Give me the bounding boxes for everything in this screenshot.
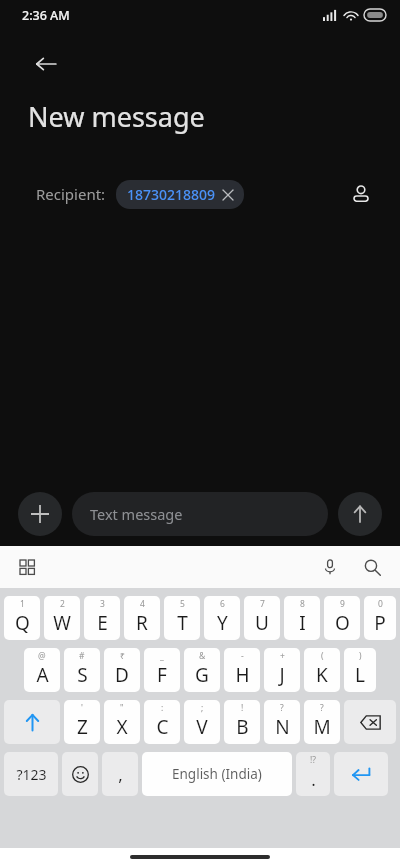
staticText: 5 xyxy=(180,598,185,610)
staticText: M xyxy=(313,714,331,740)
staticText: H xyxy=(235,662,250,688)
staticText: English (India) xyxy=(172,765,262,783)
staticText: O xyxy=(335,610,350,636)
button[interactable]: , xyxy=(102,752,138,796)
button[interactable]: 6 xyxy=(204,596,240,640)
staticText: K xyxy=(316,662,328,688)
staticText: 2:36 AM xyxy=(22,7,70,24)
button[interactable]: Text message xyxy=(72,492,328,536)
staticText: X xyxy=(116,714,128,740)
staticText: ? xyxy=(320,702,324,714)
staticText: New message xyxy=(28,98,205,135)
staticText: ₹ xyxy=(120,650,125,662)
button[interactable] xyxy=(344,700,396,744)
staticText: E xyxy=(97,610,108,636)
staticText: N xyxy=(275,714,290,740)
staticText: 7 xyxy=(260,598,265,610)
staticText: ) xyxy=(359,650,362,662)
button[interactable]: 1 xyxy=(4,596,40,640)
staticText: A xyxy=(36,662,49,688)
staticText: 3 xyxy=(100,598,105,610)
button[interactable]: Back xyxy=(28,46,64,82)
button[interactable]: Voice input xyxy=(314,551,346,583)
button[interactable]: ( xyxy=(304,648,340,692)
button[interactable]: 0 xyxy=(364,596,396,640)
staticText: 0 xyxy=(378,598,383,610)
button[interactable]: English (India) xyxy=(142,752,292,796)
staticText: W xyxy=(53,610,71,636)
button[interactable]: 9 xyxy=(324,596,360,640)
button[interactable]: ? xyxy=(304,700,340,744)
button[interactable]: : xyxy=(144,700,180,744)
button[interactable]: !? xyxy=(296,752,330,796)
staticText: 8 xyxy=(300,598,305,610)
staticText: F xyxy=(157,662,167,688)
button[interactable]: Add attachment xyxy=(18,492,62,536)
staticText: Recipient: xyxy=(36,184,106,204)
staticText: P xyxy=(374,610,386,636)
staticText: Z xyxy=(77,714,88,740)
button[interactable]: 2 xyxy=(44,596,80,640)
staticText: @ xyxy=(38,650,46,662)
staticText: 4 xyxy=(140,598,145,610)
button[interactable]: " xyxy=(104,700,140,744)
button[interactable]: ' xyxy=(64,700,100,744)
button[interactable]: 8 xyxy=(284,596,320,640)
button[interactable]: 4 xyxy=(124,596,160,640)
staticText: , xyxy=(118,763,123,786)
staticText: + xyxy=(280,650,285,662)
staticText: 6 xyxy=(220,598,225,610)
button[interactable]: 3 xyxy=(84,596,120,640)
button[interactable] xyxy=(62,752,98,796)
staticText: 1 xyxy=(20,598,25,610)
staticText: 18730218809 xyxy=(127,185,216,204)
button[interactable]: Choose contact xyxy=(340,173,382,215)
staticText: C xyxy=(156,714,169,740)
staticText: Y xyxy=(217,610,228,636)
staticText: ' xyxy=(81,702,83,714)
button[interactable]: 5 xyxy=(164,596,200,640)
staticText: ; xyxy=(201,702,204,714)
button[interactable]: & xyxy=(184,648,220,692)
staticText: !? xyxy=(310,754,316,766)
staticText: V xyxy=(196,714,208,740)
staticText: : xyxy=(161,702,164,714)
staticText: & xyxy=(199,650,206,662)
staticText: _ xyxy=(160,650,164,662)
staticText: Text message xyxy=(90,504,183,524)
button[interactable]: ! xyxy=(224,700,260,744)
button[interactable]: 18730218809 xyxy=(116,180,244,209)
staticText: D xyxy=(115,662,129,688)
button[interactable]: + xyxy=(264,648,300,692)
button[interactable]: _ xyxy=(144,648,180,692)
button[interactable]: ? xyxy=(264,700,300,744)
staticText: 2 xyxy=(60,598,65,610)
button[interactable]: Keyboard options xyxy=(12,552,42,582)
staticText: - xyxy=(241,650,244,662)
staticText: I xyxy=(299,610,306,636)
button[interactable] xyxy=(334,752,388,796)
button[interactable]: ₹ xyxy=(104,648,140,692)
staticText: # xyxy=(79,650,85,662)
button[interactable] xyxy=(4,700,60,744)
button[interactable]: - xyxy=(224,648,260,692)
button[interactable]: Search xyxy=(356,551,388,583)
button[interactable]: @ xyxy=(24,648,60,692)
button[interactable]: ; xyxy=(184,700,220,744)
button[interactable]: ) xyxy=(344,648,376,692)
button[interactable]: # xyxy=(64,648,100,692)
staticText: ( xyxy=(321,650,324,662)
staticText: G xyxy=(195,662,209,688)
staticText: B xyxy=(236,714,249,740)
button[interactable]: ?123 xyxy=(4,752,58,796)
staticText: J xyxy=(279,662,285,688)
button[interactable]: Send xyxy=(338,492,382,536)
staticText: R xyxy=(136,610,148,636)
staticText: . xyxy=(311,768,316,791)
staticText: S xyxy=(77,662,88,688)
staticText: " xyxy=(120,702,124,714)
staticText: U xyxy=(255,610,269,636)
staticText: ?123 xyxy=(16,765,47,784)
button[interactable]: 7 xyxy=(244,596,280,640)
staticText: T xyxy=(177,610,188,636)
